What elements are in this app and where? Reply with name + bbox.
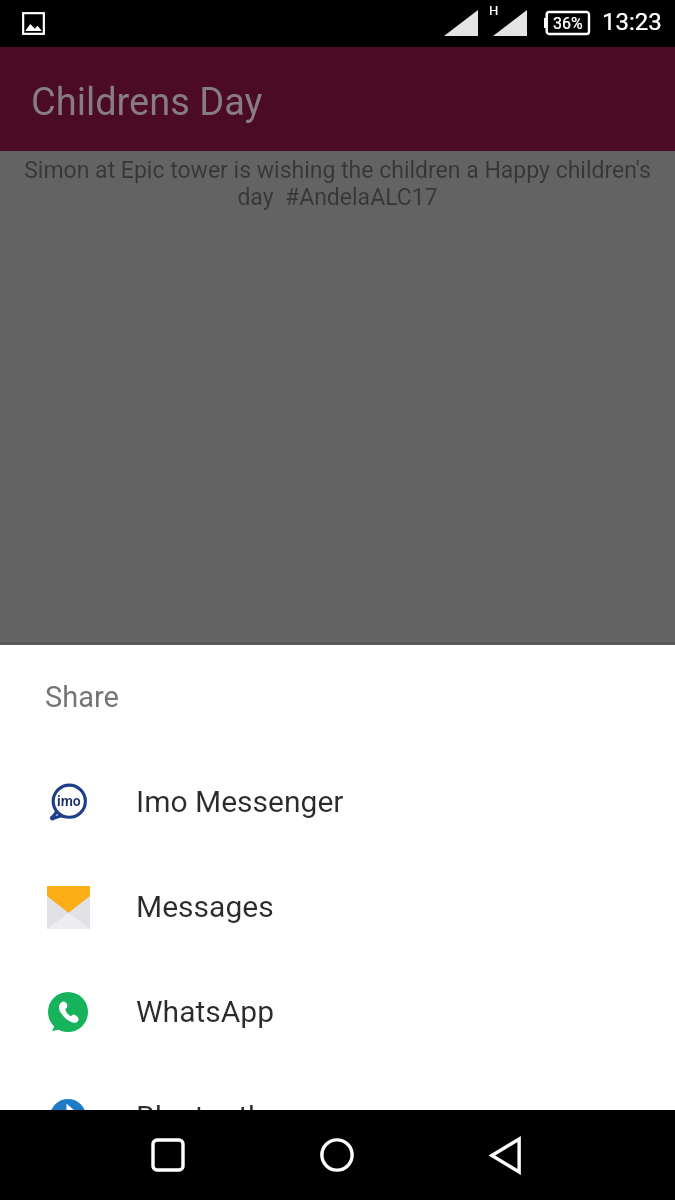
staticText: 36% (553, 14, 583, 33)
button[interactable]: Bluetooth (0, 1064, 675, 1169)
button[interactable]: WhatsApp (0, 959, 675, 1064)
button[interactable]: Back (421, 1110, 590, 1200)
button[interactable]: imo (0, 749, 675, 854)
button[interactable]: Messages (0, 854, 675, 959)
staticText: Imo Messenger (136, 784, 344, 819)
staticText: Childrens Day (31, 80, 263, 125)
button[interactable]: Recents (84, 1110, 252, 1200)
staticText: imo (57, 793, 81, 809)
staticText: 13:23 (602, 8, 662, 36)
other: Screenshot (22, 12, 45, 35)
staticText: Bluetooth (136, 1099, 265, 1134)
staticText: H (489, 3, 499, 18)
staticText: Simon at Epic tower is wishing the child… (10, 157, 665, 210)
staticText: Messages (136, 889, 274, 924)
staticText: Share (45, 680, 119, 714)
staticText: WhatsApp (136, 994, 275, 1029)
button[interactable]: Home (252, 1110, 421, 1200)
